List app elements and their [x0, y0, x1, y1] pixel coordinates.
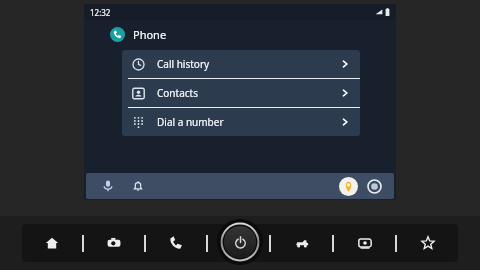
button[interactable]: Home: [22, 224, 82, 262]
button[interactable]: Camera: [84, 224, 144, 262]
button[interactable]: Power: [217, 219, 263, 265]
button[interactable]: Home: [365, 177, 384, 196]
button[interactable]: Maps: [339, 177, 358, 196]
staticText: Dial a number: [157, 115, 340, 129]
staticText: 12:32: [90, 7, 111, 18]
staticText: Phone: [133, 27, 167, 42]
button[interactable]: Contacts: [122, 79, 360, 107]
staticText: Contacts: [157, 86, 340, 100]
button[interactable]: Car: [271, 224, 332, 262]
button[interactable]: Dial a number: [122, 108, 360, 136]
button[interactable]: Media: [334, 224, 395, 262]
button[interactable]: Call history: [122, 50, 360, 78]
button[interactable]: Favourites: [397, 224, 458, 262]
staticText: Call history: [157, 57, 340, 71]
button[interactable]: Phone: [146, 224, 206, 262]
button[interactable]: Notifications: [128, 176, 148, 196]
button[interactable]: Microphone: [98, 176, 118, 196]
